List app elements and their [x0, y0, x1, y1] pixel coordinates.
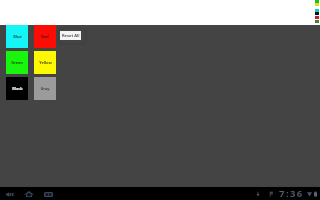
button[interactable]: Red [34, 25, 56, 48]
staticText: Gray [40, 86, 50, 91]
button[interactable]: Reset All [60, 31, 81, 40]
staticText: 7:36 [279, 187, 304, 200]
button[interactable]: Black [6, 77, 28, 100]
button[interactable]: Yellow [34, 51, 56, 74]
button[interactable]: Gray [34, 77, 56, 100]
staticText: Yellow [39, 60, 52, 65]
button[interactable]: Green [6, 51, 28, 74]
button[interactable]: Recent apps [42, 188, 55, 200]
button[interactable]: Blue [6, 25, 28, 48]
staticText: Reset All [62, 33, 80, 38]
staticText: Red [41, 34, 49, 39]
staticText: Blue [13, 34, 22, 39]
staticText: Green [11, 60, 23, 65]
button[interactable]: Home [22, 188, 35, 200]
staticText: Black [12, 86, 23, 91]
button[interactable]: Back [3, 188, 16, 200]
